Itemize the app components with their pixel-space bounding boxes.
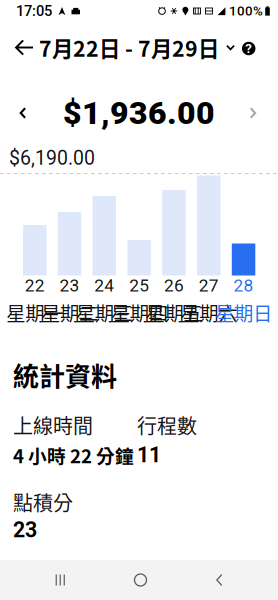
staticText: 4 小時 22 分鐘: [13, 441, 134, 468]
staticText: 24: [94, 275, 114, 296]
staticText: 28: [233, 275, 253, 296]
staticText: $6,190.00: [9, 147, 95, 169]
staticText: 星期五: [145, 298, 202, 326]
staticText: 星期日: [215, 298, 272, 326]
staticText: 行程數: [137, 410, 197, 439]
staticText: 7月22日 - 7月29日: [39, 32, 219, 63]
button[interactable]: 7月22日 - 7月29日: [39, 26, 235, 69]
staticText: 22: [25, 275, 45, 296]
staticText: 統計資料: [13, 356, 117, 394]
staticText: 100%: [229, 3, 263, 19]
staticText: 星期一: [6, 298, 63, 326]
staticText: 23: [13, 517, 37, 542]
staticText: 星期二: [41, 298, 98, 326]
staticText: 星期四: [111, 298, 168, 326]
staticText: 23: [59, 275, 79, 296]
staticText: 星期六: [180, 298, 237, 326]
button[interactable]: Back: [8, 30, 41, 64]
button[interactable]: Next week: [241, 99, 264, 127]
button[interactable]: Home: [120, 560, 160, 600]
button[interactable]: Back: [202, 560, 237, 600]
button[interactable]: Help: [237, 37, 260, 60]
staticText: 上線時間: [13, 410, 93, 439]
staticText: 26: [164, 275, 184, 296]
staticText: 25: [129, 275, 149, 296]
staticText: 27: [199, 275, 219, 296]
staticText: 星期三: [76, 298, 133, 326]
staticText: 點積分: [13, 487, 73, 516]
staticText: $1,936.00: [63, 94, 215, 132]
staticText: 17:05: [16, 2, 52, 20]
button[interactable]: Recent apps: [41, 560, 79, 599]
staticText: ?: [245, 41, 252, 56]
button[interactable]: Previous week: [11, 99, 34, 127]
staticText: 11: [137, 442, 161, 467]
